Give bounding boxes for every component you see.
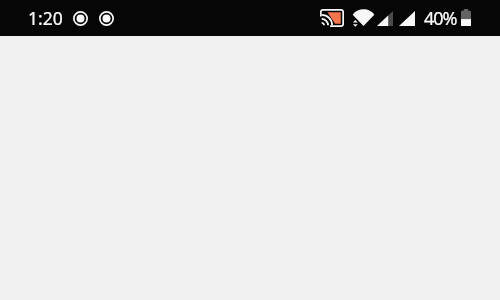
other: Cast bbox=[320, 9, 344, 27]
other: Status indicator bbox=[73, 11, 88, 26]
other: Status indicator bbox=[99, 11, 114, 26]
staticText: 40% bbox=[424, 6, 457, 31]
other: Mobile signal bbox=[399, 11, 415, 26]
other: Mobile signal bbox=[377, 11, 393, 26]
other: Battery 40 percent bbox=[461, 9, 471, 26]
other: Wi-Fi bbox=[352, 10, 375, 26]
staticText: 1:20 bbox=[28, 6, 63, 30]
